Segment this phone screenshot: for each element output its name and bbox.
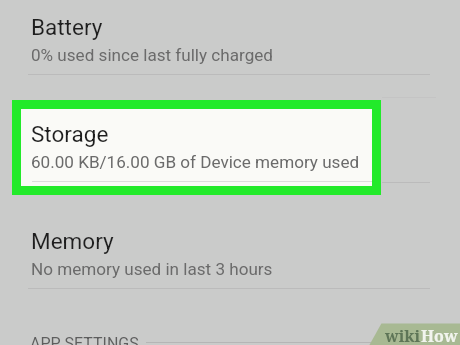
staticText: How <box>421 325 458 345</box>
staticText: No memory used in last 3 hours <box>31 259 273 279</box>
staticText: APP SETTINGS <box>30 334 139 345</box>
staticText: Battery <box>31 14 103 40</box>
button[interactable]: Battery <box>0 0 460 74</box>
staticText: Storage <box>31 121 109 147</box>
staticText: 0% used since last fully charged <box>31 45 273 65</box>
button[interactable]: Storage <box>21 109 372 186</box>
staticText: wiki <box>385 325 421 345</box>
button[interactable]: Memory <box>0 215 460 289</box>
staticText: 60.00 KB/16.00 GB of Device memory used <box>31 152 360 172</box>
staticText: Memory <box>31 228 114 254</box>
